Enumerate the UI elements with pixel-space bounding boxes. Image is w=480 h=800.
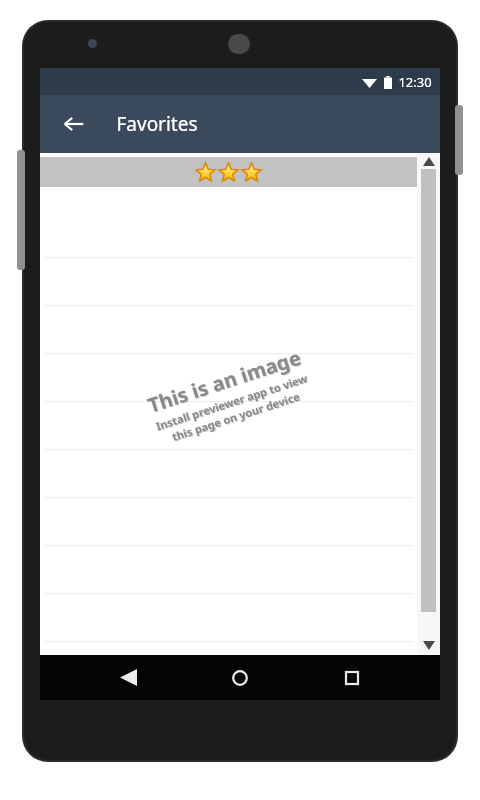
button[interactable] [40, 354, 417, 402]
button[interactable] [40, 402, 417, 450]
staticText: 12:30 [398, 73, 432, 91]
button[interactable] [40, 157, 417, 187]
staticText: Install previewer app to view [155, 371, 311, 434]
staticText: This is an image [145, 344, 306, 419]
staticText: This is an image [144, 344, 304, 419]
button[interactable]: Recent apps [328, 655, 376, 700]
button[interactable]: Back [104, 655, 152, 700]
staticText: this page on your device [171, 389, 303, 445]
button[interactable]: Back [52, 102, 96, 146]
staticText: Install previewer app to view [154, 370, 309, 434]
button[interactable]: Home [216, 655, 264, 700]
staticText: Favorites [116, 111, 198, 137]
staticText: this page on your device [170, 389, 302, 444]
button[interactable] [40, 642, 417, 690]
